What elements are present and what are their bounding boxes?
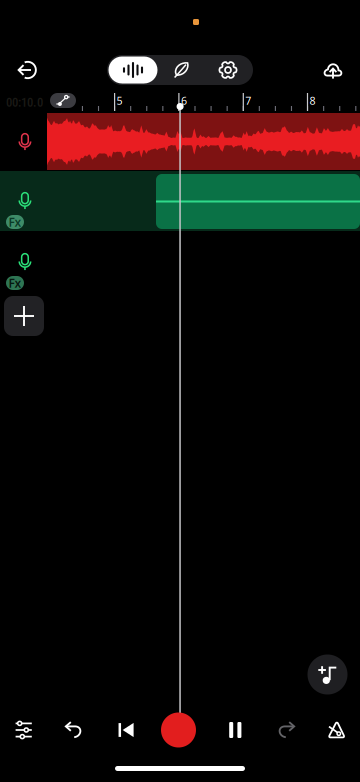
- button[interactable]: Track 3 effects: [6, 276, 24, 290]
- button[interactable]: Metronome: [313, 707, 359, 753]
- button[interactable]: Undo: [51, 707, 97, 753]
- button[interactable]: Tracks: [108, 56, 157, 83]
- button[interactable]: Close project: [5, 48, 49, 92]
- button[interactable]: Upload to cloud: [311, 48, 355, 92]
- staticText: 8: [309, 93, 315, 108]
- button[interactable]: Automation: [50, 93, 76, 108]
- button[interactable]: Track 1 microphone: [5, 123, 45, 161]
- staticText: Fx: [8, 214, 21, 230]
- button[interactable]: Mixer: [1, 707, 47, 753]
- staticText: 5: [117, 93, 123, 108]
- button[interactable]: Record: [155, 707, 201, 753]
- staticText: 6: [181, 93, 187, 108]
- staticText: 7: [245, 93, 251, 108]
- button[interactable]: Add loop: [307, 654, 347, 694]
- staticText: Fx: [8, 275, 21, 291]
- button[interactable]: Track 3 microphone: [5, 243, 45, 281]
- button[interactable]: Track 2 microphone: [5, 182, 45, 220]
- button[interactable]: Go to start: [103, 707, 149, 753]
- button[interactable]: Track 2 effects: [6, 215, 24, 229]
- staticText: 00:10.0: [6, 95, 43, 110]
- button[interactable]: Add track: [4, 296, 44, 336]
- button[interactable]: Lyrics: [157, 56, 204, 83]
- button[interactable]: Pause: [212, 707, 258, 753]
- button[interactable]: Redo: [263, 707, 309, 753]
- button[interactable]: Project settings: [204, 56, 251, 83]
